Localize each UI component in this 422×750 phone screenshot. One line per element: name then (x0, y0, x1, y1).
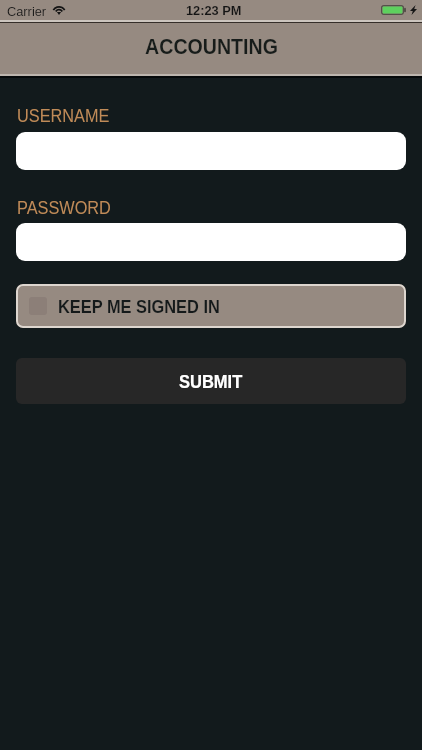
staticText: KEEP ME SIGNED IN (58, 296, 220, 316)
button[interactable]: SUBMIT (16, 358, 406, 404)
button[interactable]: Username field (16, 132, 406, 170)
staticText: SUBMIT (179, 371, 243, 391)
other: Wi-Fi signal (52, 4, 66, 14)
staticText: 12:23 PM (186, 3, 242, 17)
staticText: PASSWORD (17, 197, 111, 217)
staticText: USERNAME (17, 105, 110, 125)
button[interactable]: KEEP ME SIGNED IN (16, 284, 406, 328)
button[interactable]: Password field (16, 223, 406, 261)
staticText: Carrier (7, 4, 47, 18)
other: Battery charging (381, 4, 417, 16)
staticText: ACCOUNTING (145, 34, 278, 58)
